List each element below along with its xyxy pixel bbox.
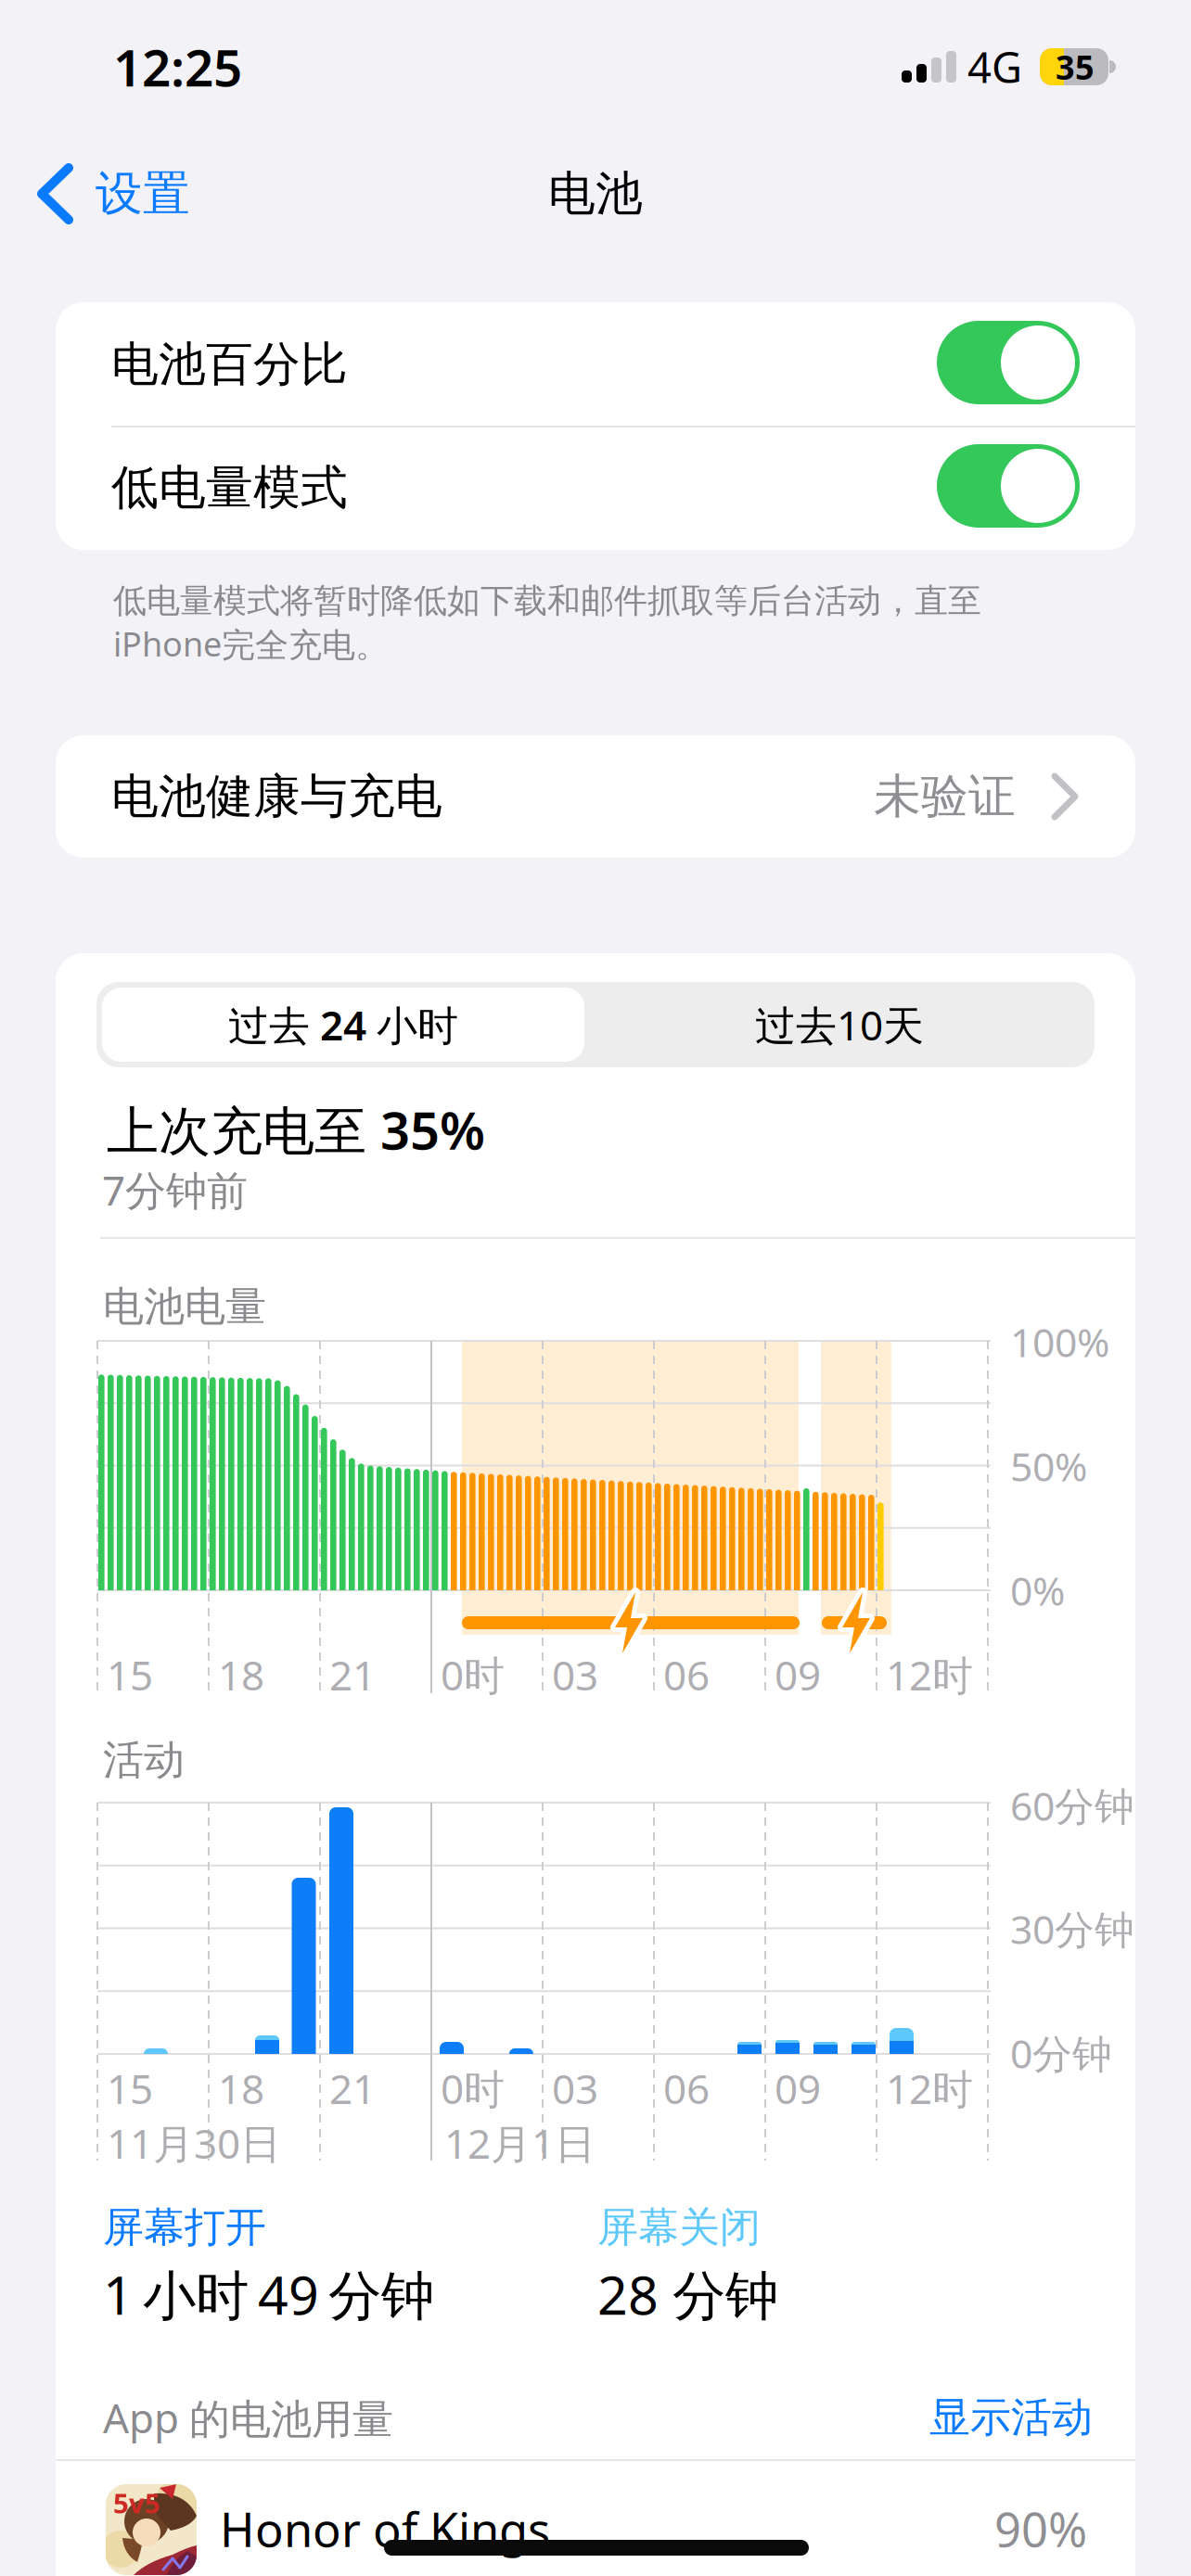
staticText: 1 小时 49 分钟	[103, 2259, 434, 2329]
button[interactable]	[937, 444, 1080, 528]
button[interactable]: 低电量模式	[56, 427, 1135, 550]
staticText: 21	[329, 2061, 376, 2115]
staticText: 0时	[441, 2061, 505, 2115]
button[interactable]: 5v5	[56, 2461, 1135, 2576]
button[interactable]: 过去 24 小时	[102, 988, 584, 1062]
staticText: 电池	[548, 165, 643, 223]
staticText: 电池电量	[103, 1282, 266, 1332]
staticText: 09	[775, 2061, 821, 2115]
staticText: 屏幕关闭	[597, 2202, 761, 2252]
staticText: 50%	[1010, 1440, 1087, 1492]
staticText: Honor of Kings	[220, 2498, 550, 2560]
staticText: 未验证	[874, 768, 1016, 825]
staticText: 60分钟	[1010, 1779, 1134, 1832]
staticText: 7分钟前	[102, 1163, 248, 1217]
staticText: 12时	[886, 2061, 973, 2115]
staticText: 18	[218, 1648, 264, 1702]
staticText: 设置	[96, 165, 190, 223]
staticText: 11月30日	[107, 2116, 281, 2170]
staticText: App 的电池用量	[103, 2390, 393, 2445]
button[interactable]	[937, 321, 1080, 404]
button[interactable]: 电池百分比	[56, 302, 1135, 426]
staticText: 35	[1056, 45, 1095, 89]
staticText: 低电量模式	[111, 459, 348, 517]
staticText: 活动	[103, 1735, 185, 1785]
staticText: 15	[107, 1648, 153, 1702]
staticText: 电池百分比	[111, 336, 348, 393]
staticText: 过去 24 小时	[228, 998, 458, 1052]
staticText: 03	[552, 1648, 598, 1702]
staticText: 0分钟	[1010, 2027, 1112, 2079]
staticText: 屏幕打开	[103, 2202, 266, 2252]
staticText: 09	[775, 1648, 821, 1702]
button[interactable]: 设置	[37, 157, 241, 231]
staticText: 12月1日	[444, 2116, 595, 2170]
staticText: 03	[552, 2061, 598, 2115]
staticText: 0时	[441, 1648, 505, 1702]
staticText: 06	[663, 1648, 710, 1702]
staticText: 0%	[1010, 1564, 1065, 1617]
staticText: 90%	[994, 2498, 1087, 2560]
staticText: 06	[663, 2061, 710, 2115]
staticText: 过去10天	[755, 998, 924, 1052]
staticText: 18	[218, 2061, 264, 2115]
staticText: 5v5	[113, 2485, 160, 2521]
staticText: 12:25	[113, 33, 242, 100]
staticText: 上次充电至 35%	[107, 1095, 485, 1164]
button[interactable]: 过去10天	[584, 982, 1095, 1067]
staticText: 21	[329, 1648, 376, 1702]
staticText: 30分钟	[1010, 1903, 1134, 1955]
staticText: 28 分钟	[597, 2259, 778, 2329]
staticText: 电池健康与充电	[111, 768, 442, 825]
staticText: 4G	[967, 39, 1022, 95]
staticText: 显示活动	[929, 2392, 1093, 2442]
button[interactable]: 电池健康与充电	[56, 735, 1135, 858]
staticText: 100%	[1010, 1316, 1109, 1368]
staticText: iPhone完全充电。	[113, 621, 389, 666]
button[interactable]: 显示活动	[870, 2380, 1093, 2455]
staticText: 低电量模式将暂时降低如下载和邮件抓取等后台活动，直至	[113, 580, 981, 621]
staticText: 12时	[886, 1648, 973, 1702]
staticText: 15	[107, 2061, 153, 2115]
